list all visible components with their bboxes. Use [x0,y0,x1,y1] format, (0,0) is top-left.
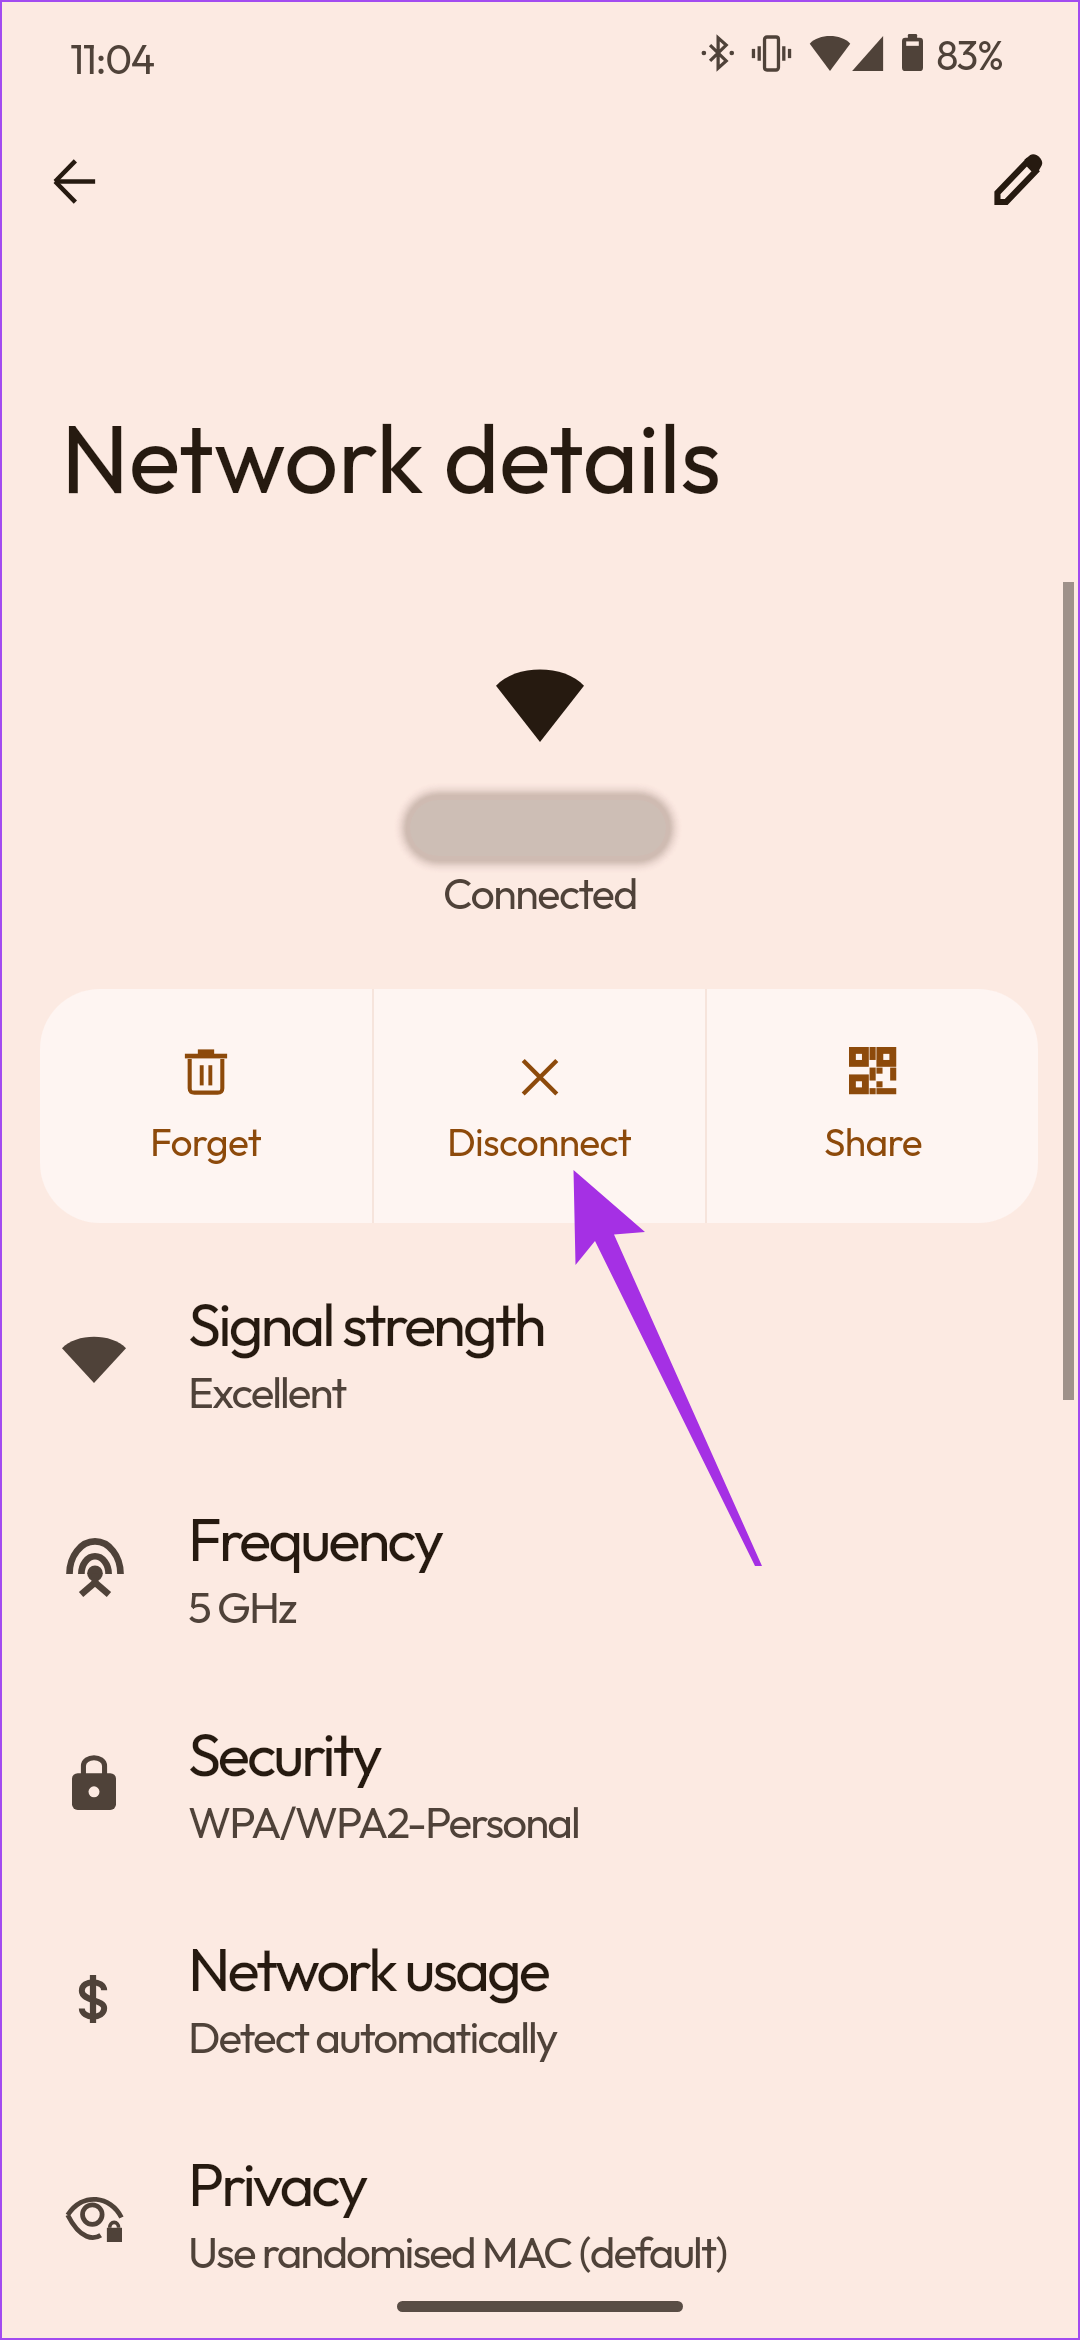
staticText: Use randomised MAC (default) [188,2224,727,2279]
button[interactable]: Share [707,989,1038,1223]
staticText: Detect automatically [188,2009,557,2064]
staticText: Excellent [188,1364,346,1419]
button[interactable]: Edit [975,134,1063,222]
staticText: Network usage [188,1931,548,2007]
staticText: Network details [61,397,721,518]
staticText: 83% [936,29,1003,81]
button[interactable]: Disconnect [374,989,705,1223]
staticText: Signal strength [188,1286,544,1362]
staticText: 11:04 [70,33,154,85]
button[interactable]: Frequency [0,1501,1080,1716]
staticText: Connected [443,866,637,920]
button[interactable]: Back [30,137,118,225]
staticText: Security [188,1716,380,1792]
button[interactable]: Security [0,1716,1080,1931]
button[interactable]: Signal strength [0,1286,1080,1501]
staticText: Frequency [188,1501,442,1577]
staticText: Privacy [188,2146,366,2222]
staticText: WPA/WPA2-Personal [188,1794,579,1849]
button[interactable]: Network usage [0,1931,1080,2146]
button[interactable]: Forget [40,989,372,1223]
staticText: 5 GHz [188,1579,296,1634]
staticText: Forget [150,1117,262,1166]
staticText: Disconnect [447,1117,632,1166]
button[interactable]: Privacy [0,2146,1080,2340]
staticText: Share [824,1117,922,1166]
